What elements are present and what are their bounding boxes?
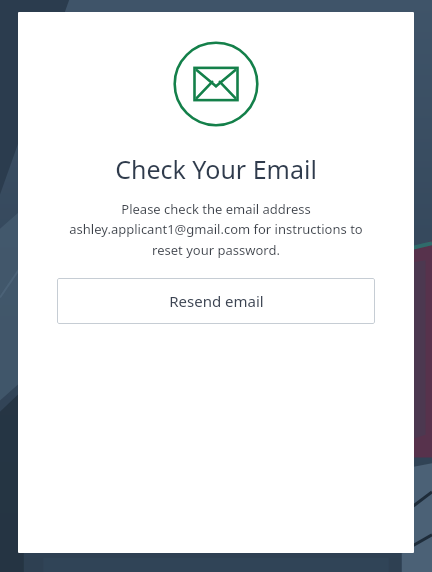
button[interactable]: Resend email [57,278,375,324]
other: Email sent [173,41,259,127]
staticText: Check Your Email [18,152,414,186]
staticText: Resend email [169,291,264,311]
staticText: Please check the email address ashley.ap… [30,200,402,259]
